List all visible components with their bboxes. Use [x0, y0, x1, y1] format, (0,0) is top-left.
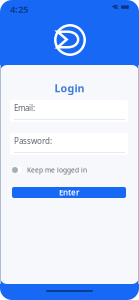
staticText: Keep me logged in — [27, 166, 87, 174]
button[interactable]: Keep me logged in — [12, 164, 129, 176]
staticText: Password: — [14, 135, 52, 146]
button[interactable]: Enter — [12, 187, 126, 198]
staticText: Email: — [14, 102, 35, 113]
staticText: Login — [54, 81, 84, 95]
staticText: Enter — [59, 187, 79, 198]
staticText: 4:25 — [10, 3, 28, 15]
